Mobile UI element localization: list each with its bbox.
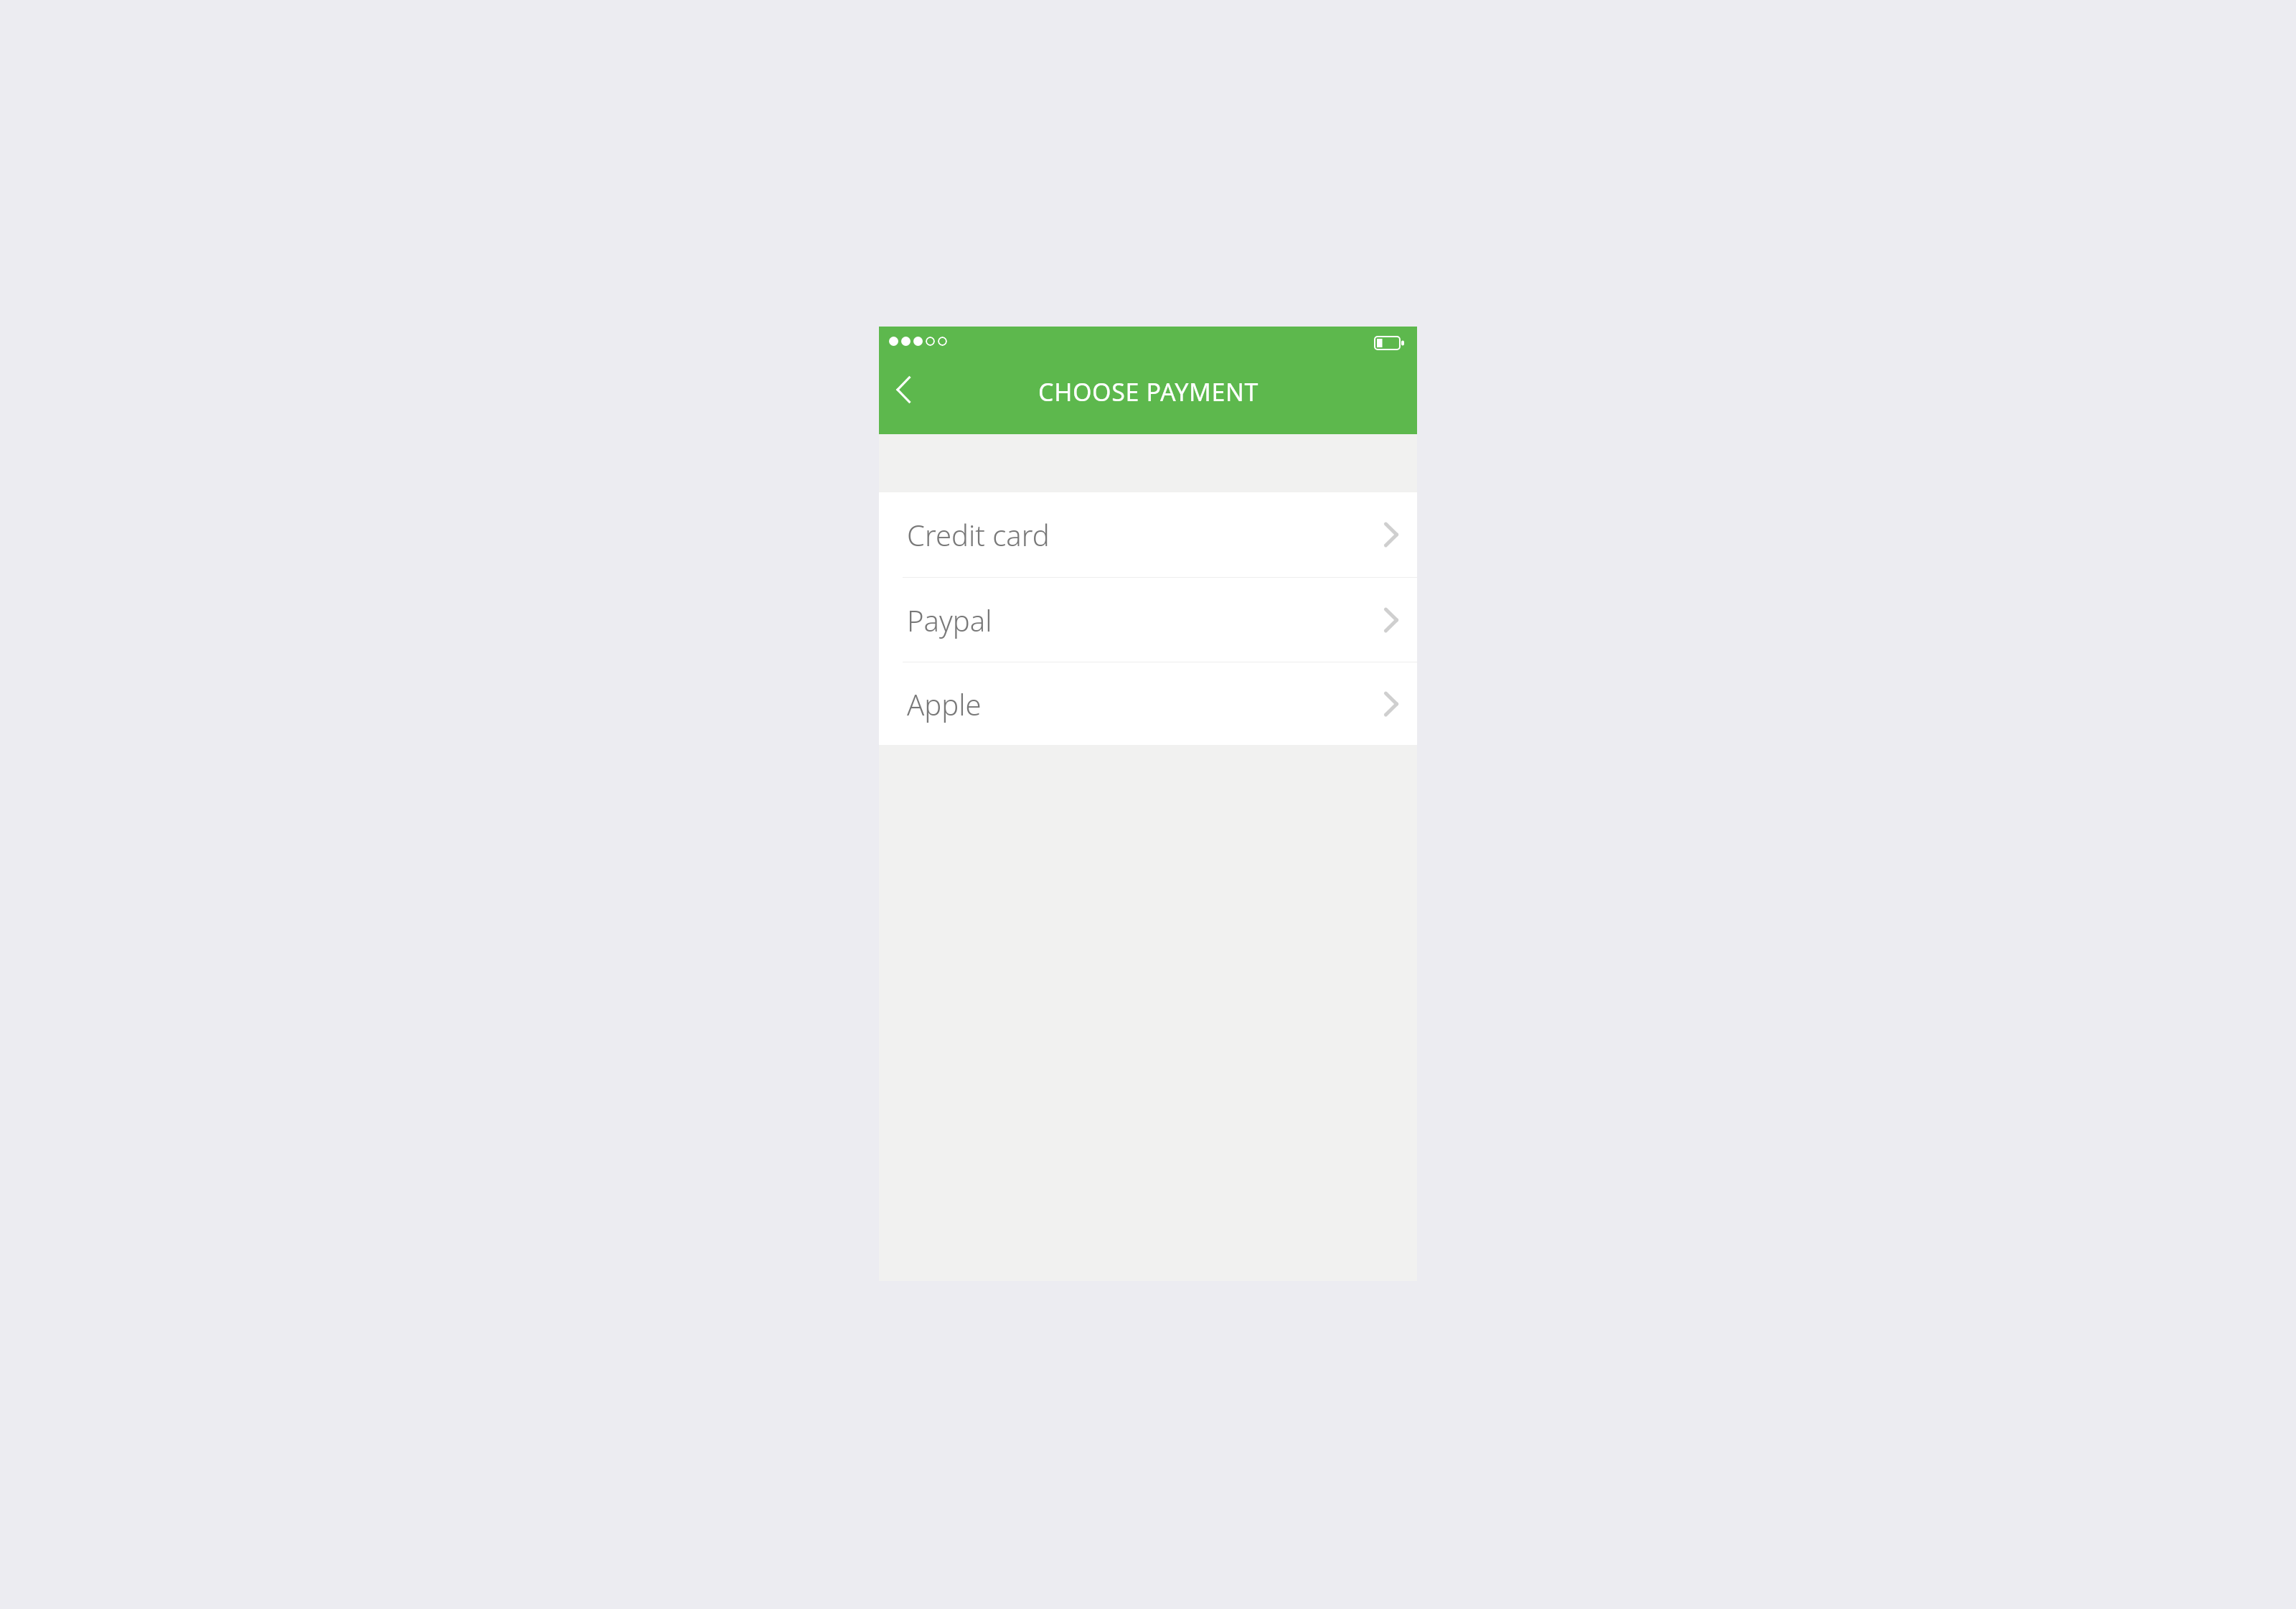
button[interactable]: Apple <box>879 662 1417 745</box>
staticText: CHOOSE PAYMENT <box>1038 375 1258 408</box>
staticText: Paypal <box>907 601 1384 639</box>
button[interactable]: Credit card <box>879 492 1417 577</box>
staticText: Credit card <box>907 515 1384 554</box>
button[interactable]: Paypal <box>879 578 1417 662</box>
staticText: Apple <box>907 685 1384 723</box>
button[interactable]: Back <box>883 370 923 410</box>
